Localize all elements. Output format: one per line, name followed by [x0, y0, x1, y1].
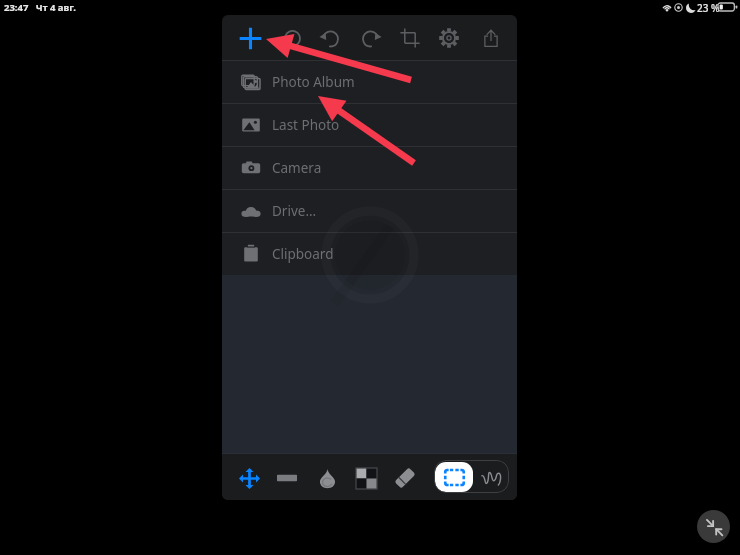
- button[interactable]: Last Photo: [222, 104, 517, 146]
- button[interactable]: Move: [232, 461, 266, 495]
- staticText: Clipboard: [272, 245, 334, 263]
- button[interactable]: Rectangle selection: [435, 462, 473, 492]
- button[interactable]: Drive...: [222, 190, 517, 232]
- button[interactable]: Transparency: [349, 461, 383, 495]
- button[interactable]: Camera: [222, 147, 517, 189]
- button[interactable]: Share: [474, 21, 508, 55]
- button[interactable]: Eraser: [388, 461, 422, 495]
- button[interactable]: Exit fullscreen: [697, 510, 730, 543]
- staticText: 23:47 Чт 4 авг.: [4, 1, 76, 14]
- staticText: Camera: [272, 159, 322, 177]
- button[interactable]: Clipboard: [222, 233, 517, 275]
- staticText: Last Photo: [272, 116, 340, 134]
- button[interactable]: Line: [270, 461, 304, 495]
- button[interactable]: Settings: [432, 21, 466, 55]
- button[interactable]: Free selection: [474, 462, 508, 492]
- button[interactable]: Smudge: [310, 461, 344, 495]
- button[interactable]: Redo: [353, 21, 387, 55]
- staticText: 23 %: [697, 1, 720, 15]
- button[interactable]: Crop: [393, 21, 427, 55]
- staticText: Drive...: [272, 202, 317, 220]
- button[interactable]: Add: [233, 21, 267, 55]
- button[interactable]: Undo all: [275, 21, 309, 55]
- button[interactable]: Photo Album: [222, 61, 517, 103]
- staticText: Photo Album: [272, 73, 355, 91]
- button[interactable]: Undo: [313, 21, 347, 55]
